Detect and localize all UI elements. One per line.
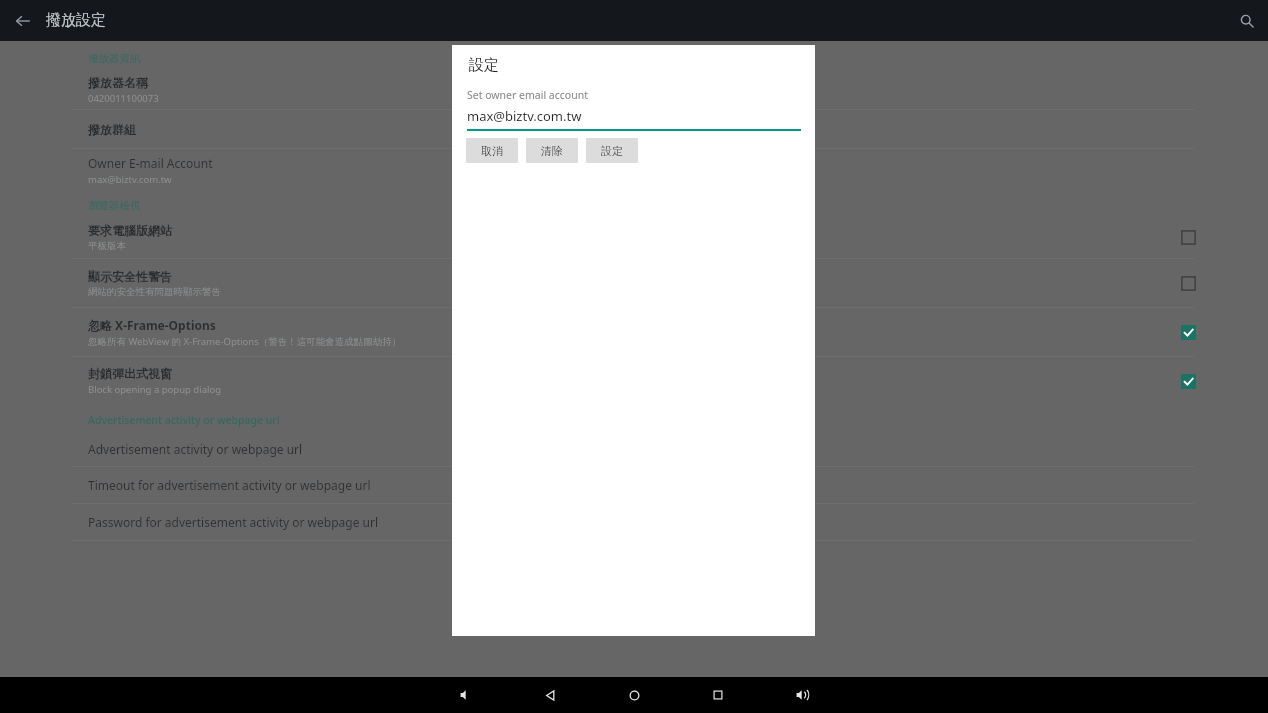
button[interactable]: 設定 bbox=[586, 138, 638, 163]
button[interactable]: Password for advertisement activity or w… bbox=[0, 504, 1268, 540]
staticText: max@biztv.com.tw bbox=[88, 173, 172, 186]
button[interactable]: 清除 bbox=[526, 138, 578, 163]
staticText: Advertisement activity or webpage url bbox=[88, 413, 280, 427]
staticText: Advertisement activity or webpage url bbox=[88, 441, 303, 457]
button[interactable]: 要求電腦版網站 bbox=[0, 217, 1268, 258]
staticText: 要求電腦版網站 bbox=[88, 223, 172, 238]
button[interactable]: Advertisement activity or webpage url bbox=[0, 432, 1268, 466]
staticText: 0420011100073 bbox=[88, 92, 159, 105]
staticText: Set owner email account bbox=[467, 88, 588, 102]
staticText: 撥放器名稱 bbox=[88, 75, 148, 90]
button[interactable]: Volume up bbox=[779, 677, 825, 713]
button[interactable]: Recents bbox=[695, 677, 741, 713]
button[interactable]: 顯示安全性警告 bbox=[0, 259, 1268, 307]
button[interactable]: Volume down bbox=[443, 677, 489, 713]
staticText: Block opening a popup dialog bbox=[88, 383, 222, 396]
button[interactable]: Timeout for advertisement activity or we… bbox=[0, 467, 1268, 503]
staticText: Timeout for advertisement activity or we… bbox=[88, 477, 371, 493]
staticText: 清除 bbox=[541, 144, 563, 158]
staticText: 設定 bbox=[601, 144, 623, 158]
button[interactable]: Home bbox=[611, 677, 657, 713]
staticText: max@biztv.com.tw bbox=[467, 107, 582, 125]
button[interactable]: Owner E-mail Account bbox=[0, 149, 1268, 191]
button[interactable]: 撥放器名稱 bbox=[0, 70, 1268, 109]
button[interactable]: max@biztv.com.tw bbox=[467, 107, 801, 129]
staticText: 瀏覽器檢視 bbox=[88, 199, 141, 212]
staticText: 取消 bbox=[481, 144, 503, 158]
button[interactable]: Back bbox=[527, 677, 573, 713]
staticText: 顯示安全性警告 bbox=[88, 269, 172, 284]
staticText: 忽略所有 WebView 的 X-Frame-Options（警告！這可能會造成… bbox=[88, 335, 402, 348]
staticText: 封鎖彈出式視窗 bbox=[88, 366, 172, 381]
staticText: 設定 bbox=[469, 56, 499, 75]
staticText: 撥放設定 bbox=[46, 11, 106, 30]
staticText: 平板版本 bbox=[88, 240, 126, 252]
staticText: 忽略 X-Frame-Options bbox=[88, 317, 216, 333]
button[interactable]: 封鎖彈出式視窗 bbox=[0, 357, 1268, 405]
staticText: 網站的安全性有問題時顯示警告 bbox=[88, 286, 221, 298]
button[interactable]: Search bbox=[1226, 0, 1268, 41]
staticText: Owner E-mail Account bbox=[88, 155, 213, 171]
button[interactable]: Back bbox=[0, 0, 46, 41]
button[interactable]: 取消 bbox=[466, 138, 518, 163]
staticText: 撥放器資訊 bbox=[88, 52, 141, 65]
button[interactable]: 撥放群組 bbox=[0, 110, 1268, 148]
button[interactable]: 忽略 X-Frame-Options bbox=[0, 308, 1268, 356]
staticText: Password for advertisement activity or w… bbox=[88, 514, 379, 530]
staticText: 撥放群組 bbox=[88, 122, 136, 137]
